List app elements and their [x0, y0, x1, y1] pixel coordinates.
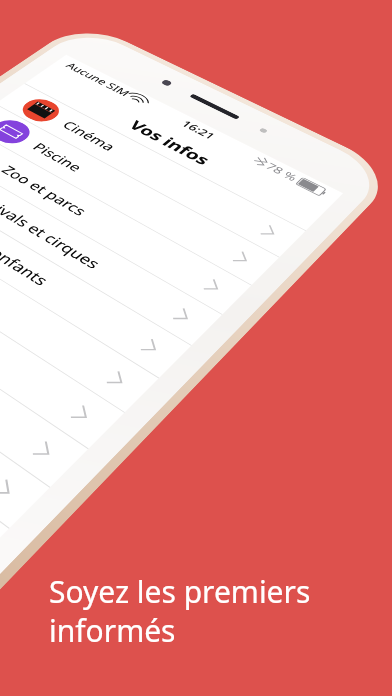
- button[interactable]: Avec les enfants: [0, 170, 192, 378]
- staticText: Zoo et parcs: [0, 162, 92, 219]
- button[interactable]: Expositions: [0, 194, 159, 412]
- staticText: Avec les enfants: [0, 211, 54, 290]
- staticText: Vos infos: [125, 117, 216, 168]
- staticText: 78 %: [262, 160, 301, 184]
- staticText: Festivals et cirques: [0, 186, 105, 272]
- staticText: Soyez les premiers informés: [49, 571, 311, 650]
- button[interactable]: Festivals et cirques: [0, 147, 222, 345]
- button[interactable]: Concerts: [0, 219, 125, 448]
- staticText: 16:21: [178, 118, 219, 142]
- button[interactable]: Spectacles: [0, 246, 89, 487]
- button[interactable]: Piscine: [0, 103, 279, 285]
- button[interactable]: Cinéma: [0, 83, 306, 257]
- button[interactable]: Balades: [0, 303, 10, 571]
- button[interactable]: Musées: [0, 274, 50, 528]
- staticText: Cinéma: [58, 118, 120, 154]
- staticText: Piscine: [28, 140, 86, 175]
- staticText: Aucune SIM: [63, 60, 133, 99]
- button[interactable]: Zoo et parcs: [0, 125, 252, 314]
